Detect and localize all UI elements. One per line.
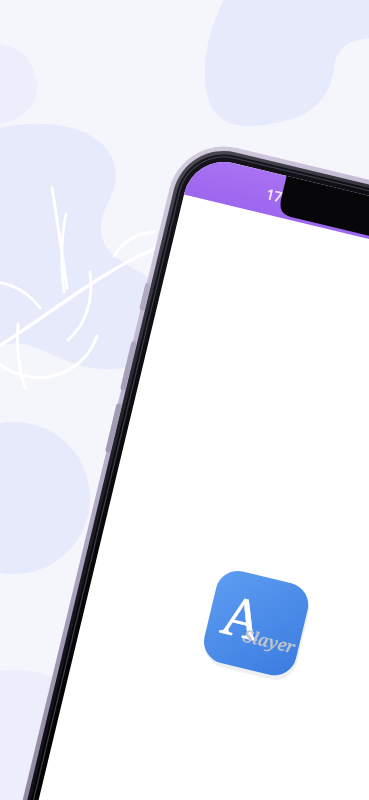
button[interactable]: A Slayer app preview — [0, 0, 369, 800]
